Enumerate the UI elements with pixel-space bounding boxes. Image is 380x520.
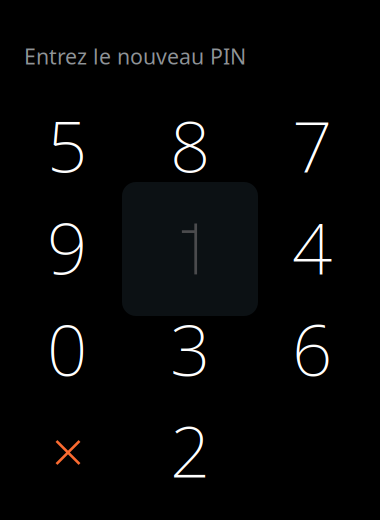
staticText: 3	[170, 302, 210, 395]
staticText: 2	[170, 403, 210, 497]
button[interactable]: 6	[244, 281, 380, 415]
button[interactable]: 3	[122, 281, 258, 415]
staticText: 8	[170, 98, 210, 192]
button[interactable]: 1	[122, 182, 258, 316]
button[interactable]: 5	[0, 78, 135, 212]
staticText: 6	[292, 302, 332, 395]
staticText: 9	[47, 200, 87, 294]
button[interactable]: Delete	[0, 385, 136, 519]
button[interactable]: 4	[244, 180, 380, 314]
button[interactable]: 0	[0, 281, 135, 415]
staticText: 7	[292, 98, 332, 192]
staticText: 0	[47, 302, 87, 395]
button[interactable]: 9	[0, 180, 135, 314]
button[interactable]: 7	[244, 78, 380, 212]
button[interactable]: 8	[122, 78, 258, 212]
staticText: 4	[292, 200, 332, 294]
staticText: 5	[47, 98, 87, 192]
button[interactable]: 2	[122, 383, 258, 517]
staticText: Entrez le nouveau PIN	[24, 42, 246, 70]
